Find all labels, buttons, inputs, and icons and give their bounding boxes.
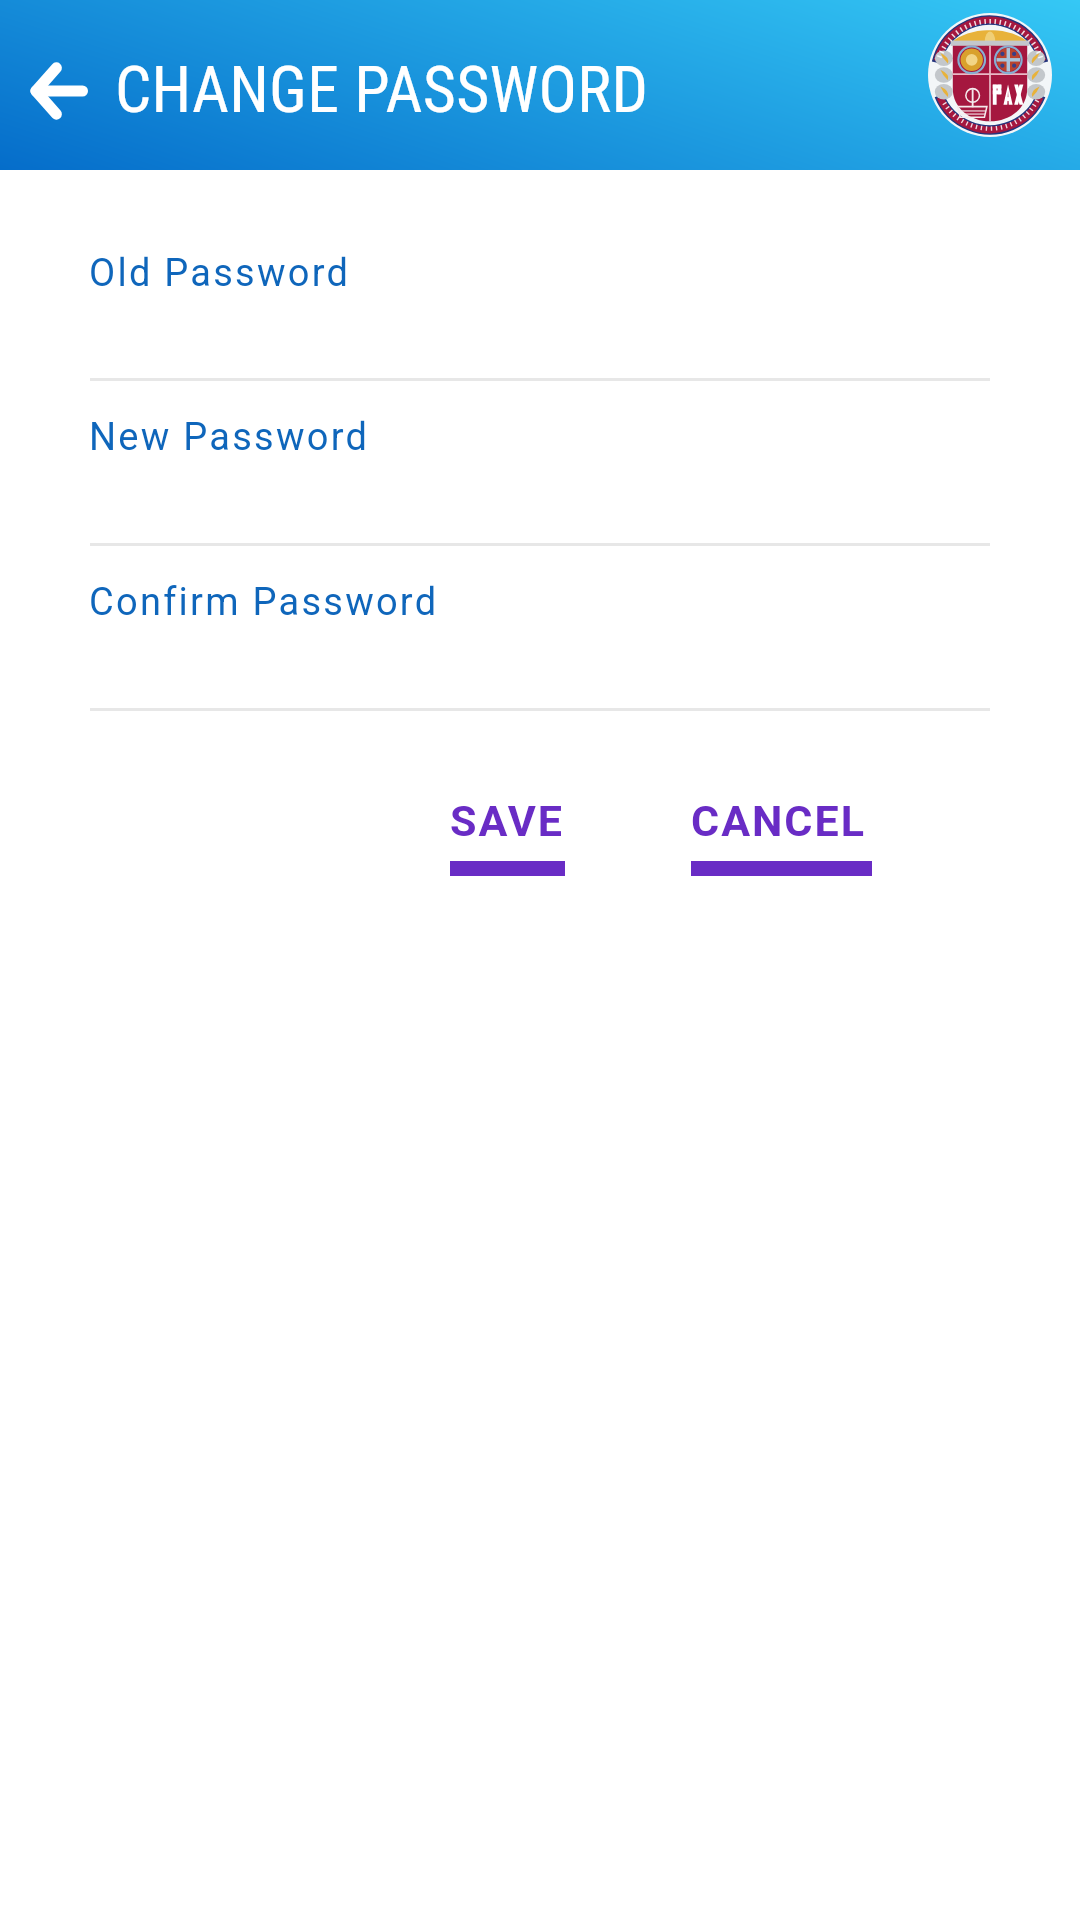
staticText: CANCEL (691, 796, 866, 846)
button[interactable]: Back (15, 47, 103, 135)
button[interactable]: CANCEL (691, 792, 872, 876)
staticText: Confirm Password (89, 580, 439, 625)
staticText: New Password (89, 415, 370, 460)
button[interactable]: SAVE (450, 792, 565, 876)
staticText: SAVE (450, 796, 564, 846)
button[interactable]: Confirm Password (90, 540, 990, 711)
button[interactable]: Old Password (90, 211, 990, 381)
button[interactable]: New Password (90, 375, 990, 546)
staticText: CHANGE PASSWORD (115, 53, 649, 128)
staticText: Old Password (89, 251, 351, 296)
